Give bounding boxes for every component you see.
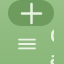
button[interactable]: Menu [10,27,44,61]
staticText: Garden [50,24,54,64]
staticText: 9:41 [14,5,36,20]
button[interactable]: Add plant [8,0,54,26]
